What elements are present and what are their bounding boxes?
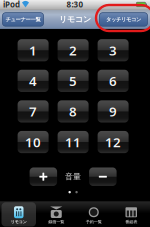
button[interactable]: 5 bbox=[58, 70, 89, 92]
button[interactable]: 3 bbox=[98, 39, 129, 61]
staticText: リモコン bbox=[11, 219, 27, 224]
button[interactable]: 4 bbox=[18, 70, 49, 92]
button[interactable]: リモコン bbox=[0, 201, 37, 227]
staticText: 予約一覧 bbox=[86, 219, 102, 224]
button[interactable]: 7 bbox=[18, 100, 49, 122]
button[interactable]: 11 bbox=[58, 131, 89, 153]
button[interactable]: 音量を上げる bbox=[30, 167, 57, 186]
staticText: 5 bbox=[69, 72, 77, 90]
staticText: 11 bbox=[65, 133, 81, 151]
staticText: チューナー一覧 bbox=[5, 16, 40, 23]
staticText: 7 bbox=[29, 103, 37, 120]
button[interactable]: 番組表 bbox=[112, 201, 150, 227]
staticText: 6 bbox=[109, 72, 117, 90]
staticText: 4 bbox=[29, 72, 37, 90]
staticText: 8:30 bbox=[66, 0, 83, 10]
staticText: 8 bbox=[69, 103, 77, 120]
staticText: 番組表 bbox=[125, 219, 137, 224]
staticText: 音量 bbox=[65, 172, 81, 182]
button[interactable]: 2 bbox=[58, 39, 89, 61]
staticText: iPod bbox=[3, 0, 20, 10]
staticText: タッチリモコン bbox=[106, 16, 141, 23]
button[interactable]: 8 bbox=[58, 100, 89, 122]
button[interactable]: 1 bbox=[18, 39, 49, 61]
staticText: 1 bbox=[29, 41, 37, 59]
staticText: 2 bbox=[69, 41, 77, 59]
staticText: 10 bbox=[25, 133, 41, 151]
button[interactable]: 録画一覧 bbox=[37, 201, 75, 227]
button[interactable]: 予約一覧 bbox=[75, 201, 112, 227]
staticText: 12 bbox=[105, 133, 121, 151]
button[interactable]: 音量を下げる bbox=[89, 167, 117, 186]
staticText: 3 bbox=[109, 41, 117, 59]
button[interactable]: 10 bbox=[18, 131, 49, 153]
button[interactable]: タッチリモコン bbox=[99, 13, 147, 26]
staticText: 録画一覧 bbox=[48, 219, 64, 224]
staticText: 9 bbox=[109, 103, 117, 120]
button[interactable]: 6 bbox=[98, 70, 129, 92]
button[interactable]: 12 bbox=[98, 131, 129, 153]
button[interactable]: チューナー一覧 bbox=[2, 13, 43, 26]
button[interactable]: 9 bbox=[98, 100, 129, 122]
staticText: リモコン bbox=[59, 14, 91, 24]
